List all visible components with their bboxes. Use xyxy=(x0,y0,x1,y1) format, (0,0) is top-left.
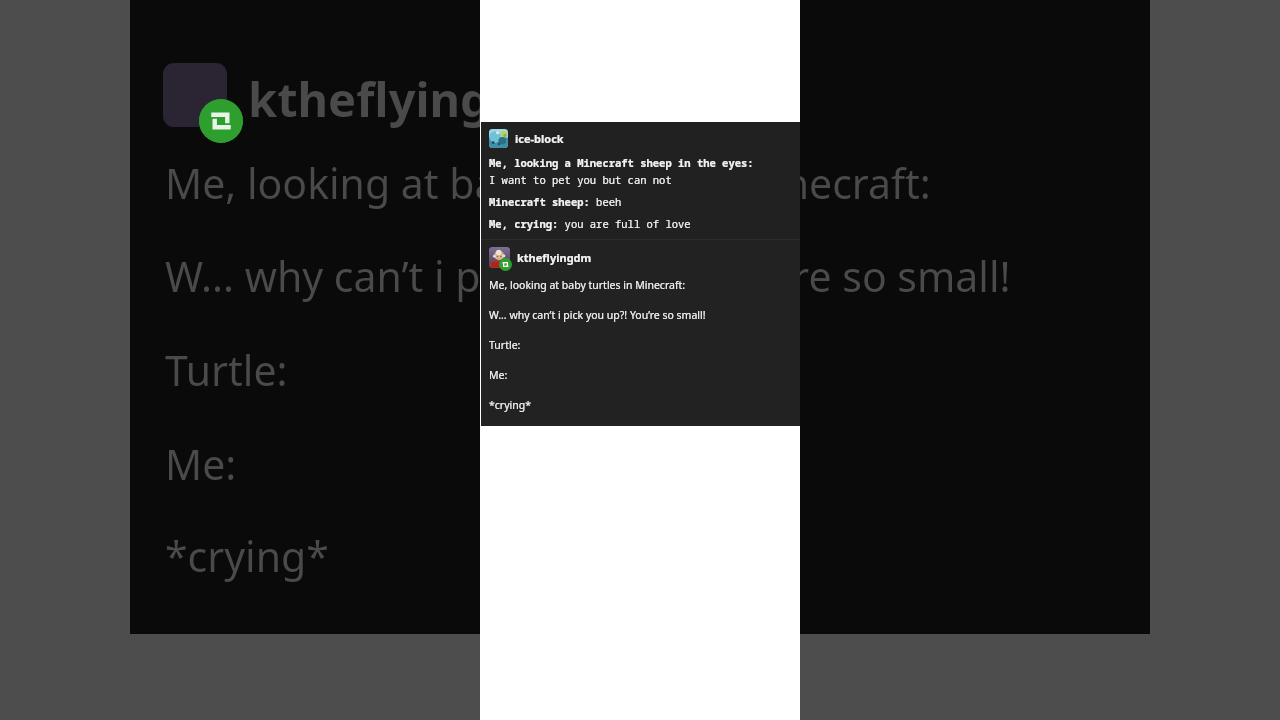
staticText: Turtle: xyxy=(489,338,521,352)
staticText: *crying* xyxy=(489,398,531,412)
staticText: ktheflyingdm xyxy=(517,250,592,265)
staticText: W... why can’t i pick you up?! You’re so… xyxy=(165,248,1011,304)
staticText: Me, looking at baby turtles in Minecraft… xyxy=(165,155,931,211)
button[interactable]: ktheflyingdm xyxy=(481,240,800,426)
staticText: Me, looking at baby turtles in Minecraft… xyxy=(489,278,686,292)
staticText: Turtle: xyxy=(165,342,288,398)
button[interactable]: ice-block xyxy=(481,122,800,239)
staticText: Me: xyxy=(489,368,508,382)
staticText: W... why can’t i pick you up?! You’re so… xyxy=(489,308,706,322)
staticText: ice-block xyxy=(515,131,564,146)
staticText: Minecraft sheep: beeh xyxy=(489,195,622,209)
staticText: Me, looking a Minecraft sheep in the eye… xyxy=(489,156,754,170)
staticText: ktheflyingdm xyxy=(248,67,566,131)
staticText: *crying* xyxy=(165,528,329,584)
staticText: Me: xyxy=(165,436,237,492)
staticText: Me, crying: you are full of love xyxy=(489,217,691,231)
staticText: I want to pet you but can not xyxy=(489,173,672,187)
